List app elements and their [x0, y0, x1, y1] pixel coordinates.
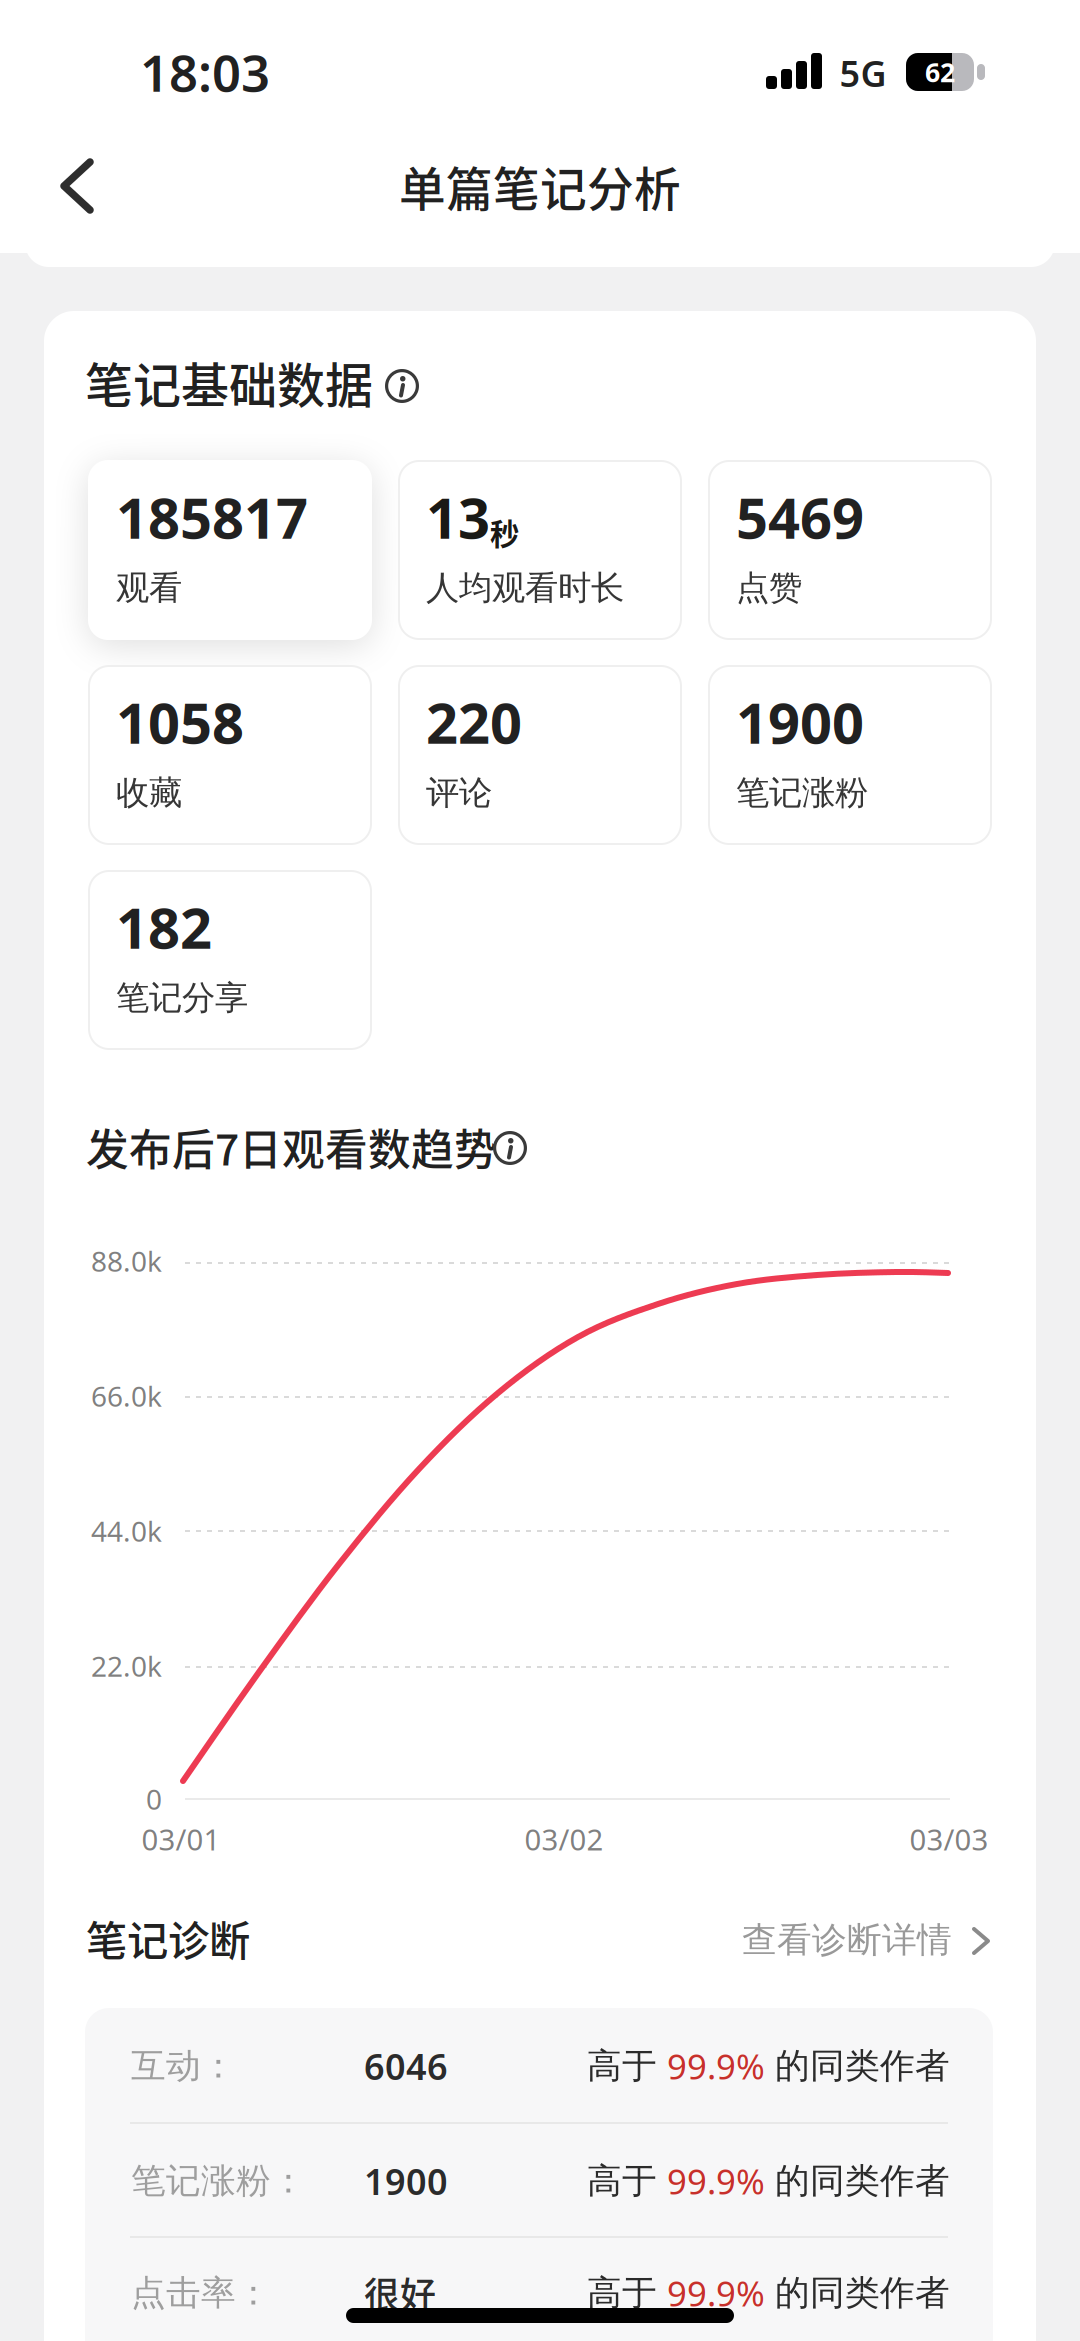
staticText: 高于	[587, 2045, 667, 2087]
staticText: 99.9%	[667, 2158, 765, 2204]
staticText: 0	[146, 1780, 162, 1818]
button[interactable]: 5469	[708, 460, 992, 640]
staticText: 单篇笔记分析	[399, 152, 681, 220]
button[interactable]: 220	[398, 665, 682, 845]
button[interactable]: 返回	[40, 146, 150, 226]
staticText: 03/02	[524, 1819, 603, 1858]
staticText: 点击率：	[131, 2272, 271, 2314]
button[interactable]: 说明	[493, 1131, 527, 1165]
staticText: 99.9%	[667, 2270, 765, 2316]
staticText: 互动：	[131, 2045, 236, 2087]
staticText: 1058	[116, 685, 244, 759]
staticText: 笔记分享	[116, 977, 248, 1018]
staticText: 185817	[116, 480, 308, 554]
staticText: 18:03	[140, 38, 270, 106]
staticText: 的同类作者	[765, 2272, 950, 2314]
staticText: 笔记涨粉	[736, 772, 868, 813]
staticText: 高于	[587, 2272, 667, 2314]
staticText: 笔记涨粉：	[131, 2160, 306, 2202]
staticText: 评论	[426, 772, 492, 813]
staticText: 的同类作者	[765, 2045, 950, 2087]
staticText: 发布后7日观看数趋势	[86, 1116, 497, 1178]
button[interactable]: 说明	[385, 369, 419, 403]
staticText: 笔记基础数据	[85, 347, 373, 417]
staticText: 1900	[736, 685, 864, 759]
staticText: 5G	[839, 49, 886, 97]
staticText: 22.0k	[91, 1647, 162, 1685]
button[interactable]: 1900	[708, 665, 992, 845]
staticText: 查看诊断详情	[742, 1919, 952, 1961]
staticText: 13秒	[426, 480, 519, 554]
staticText: 44.0k	[91, 1512, 162, 1550]
staticText: 收藏	[116, 772, 182, 813]
staticText: 03/01	[141, 1819, 220, 1858]
staticText: 1900	[364, 2157, 448, 2205]
staticText: 88.0k	[91, 1242, 162, 1280]
button[interactable]: 1058	[88, 665, 372, 845]
button[interactable]: 查看诊断详情	[652, 1912, 998, 1968]
staticText: 点赞	[736, 567, 802, 608]
button[interactable]: 185817	[88, 460, 372, 640]
staticText: 笔记诊断	[86, 1908, 250, 1968]
staticText: 03/03	[909, 1819, 988, 1858]
staticText: 观看	[116, 567, 182, 608]
staticText: 6046	[364, 2042, 448, 2090]
staticText: 高于	[587, 2160, 667, 2202]
staticText: 人均观看时长	[426, 567, 624, 608]
staticText: 5469	[736, 480, 864, 554]
staticText: 66.0k	[91, 1377, 162, 1415]
staticText: 62	[925, 54, 955, 90]
button[interactable]: 182	[88, 870, 372, 1050]
staticText: 220	[426, 685, 522, 759]
staticText: 很好	[364, 2267, 436, 2319]
button[interactable]: 13秒	[398, 460, 682, 640]
staticText: 99.9%	[667, 2043, 765, 2089]
staticText: 的同类作者	[765, 2160, 950, 2202]
staticText: 182	[116, 890, 212, 964]
